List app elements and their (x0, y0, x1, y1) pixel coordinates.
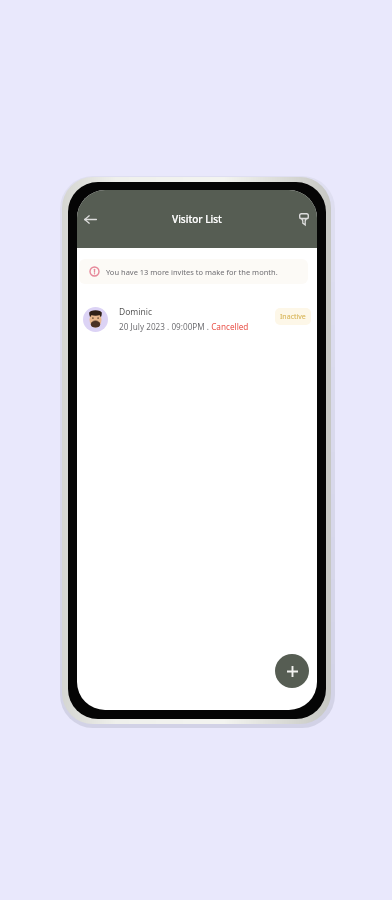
staticText: Dominic (119, 306, 153, 318)
button[interactable]: Inactive (275, 308, 311, 325)
staticText: Visitor List (172, 212, 222, 226)
button[interactable]: You have 13 more invites to make for the… (79, 259, 308, 284)
staticText: 20 July 2023 . 09:00PM . Cancelled (119, 321, 249, 332)
staticText: Inactive (280, 312, 306, 322)
button[interactable]: Dominic (77, 300, 317, 338)
button[interactable]: Filter (295, 210, 313, 228)
button[interactable]: Back (78, 207, 102, 231)
staticText: You have 13 more invites to make for the… (106, 267, 278, 277)
button[interactable]: Add visitor (275, 654, 309, 688)
